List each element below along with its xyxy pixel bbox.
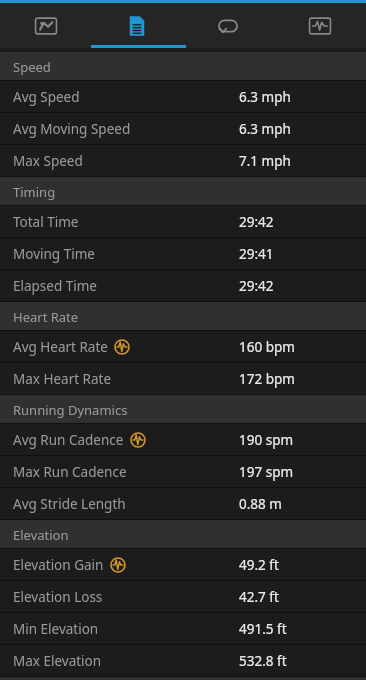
staticText: Max Elevation (13, 652, 102, 670)
button[interactable]: Map (0, 3, 91, 48)
staticText: 29:42 (239, 213, 274, 231)
button[interactable]: Details (91, 3, 182, 48)
staticText: Elapsed Time (13, 277, 97, 295)
staticText: 7.1 mph (239, 152, 291, 170)
button[interactable]: Charts (274, 3, 366, 48)
staticText: 29:42 (239, 277, 274, 295)
button[interactable]: Max Run Cadence (0, 456, 366, 488)
button[interactable]: Avg Heart Rate (0, 331, 366, 363)
button[interactable]: Elapsed Time (0, 270, 366, 302)
button[interactable]: Moving Time (0, 238, 366, 270)
staticText: Avg Speed (13, 88, 80, 106)
button[interactable]: Avg Moving Speed (0, 113, 366, 145)
staticText: Min Elevation (13, 620, 99, 638)
staticText: Elevation Loss (13, 588, 103, 606)
staticText: 172 bpm (239, 370, 295, 388)
staticText: Total Time (13, 213, 79, 231)
staticText: Max Run Cadence (13, 463, 127, 481)
button[interactable]: Max Heart Rate (0, 363, 366, 395)
staticText: Elevation (13, 526, 69, 544)
staticText: Moving Time (13, 245, 95, 263)
staticText: 160 bpm (239, 338, 295, 356)
staticText: Avg Moving Speed (13, 120, 131, 138)
button[interactable]: Max Speed (0, 145, 366, 177)
button[interactable]: Max Elevation (0, 645, 366, 677)
staticText: Timing (13, 183, 56, 201)
staticText: Avg Stride Length (13, 495, 126, 513)
button[interactable]: Total Time (0, 206, 366, 238)
button[interactable]: Elevation Gain (0, 549, 366, 581)
button[interactable]: Avg Speed (0, 81, 366, 113)
staticText: 42.7 ft (239, 588, 279, 606)
button[interactable]: Avg Run Cadence (0, 424, 366, 456)
button[interactable]: Min Elevation (0, 613, 366, 645)
staticText: Elevation Gain (13, 556, 104, 574)
staticText: 532.8 ft (239, 652, 287, 670)
staticText: 197 spm (239, 463, 294, 481)
staticText: Speed (13, 58, 51, 76)
staticText: Heart Rate (13, 308, 79, 326)
staticText: 6.3 mph (239, 120, 291, 138)
staticText: Avg Heart Rate (13, 338, 108, 356)
staticText: Max Speed (13, 152, 83, 170)
button[interactable]: Laps (182, 3, 274, 48)
staticText: 6.3 mph (239, 88, 291, 106)
staticText: 491.5 ft (239, 620, 287, 638)
staticText: 190 spm (239, 431, 294, 449)
staticText: 49.2 ft (239, 556, 279, 574)
button[interactable]: Avg Stride Length (0, 488, 366, 520)
staticText: Max Heart Rate (13, 370, 112, 388)
staticText: 29:41 (239, 245, 274, 263)
staticText: 0.88 m (239, 495, 282, 513)
staticText: Running Dynamics (13, 401, 128, 419)
button[interactable]: Elevation Loss (0, 581, 366, 613)
staticText: Avg Run Cadence (13, 431, 124, 449)
